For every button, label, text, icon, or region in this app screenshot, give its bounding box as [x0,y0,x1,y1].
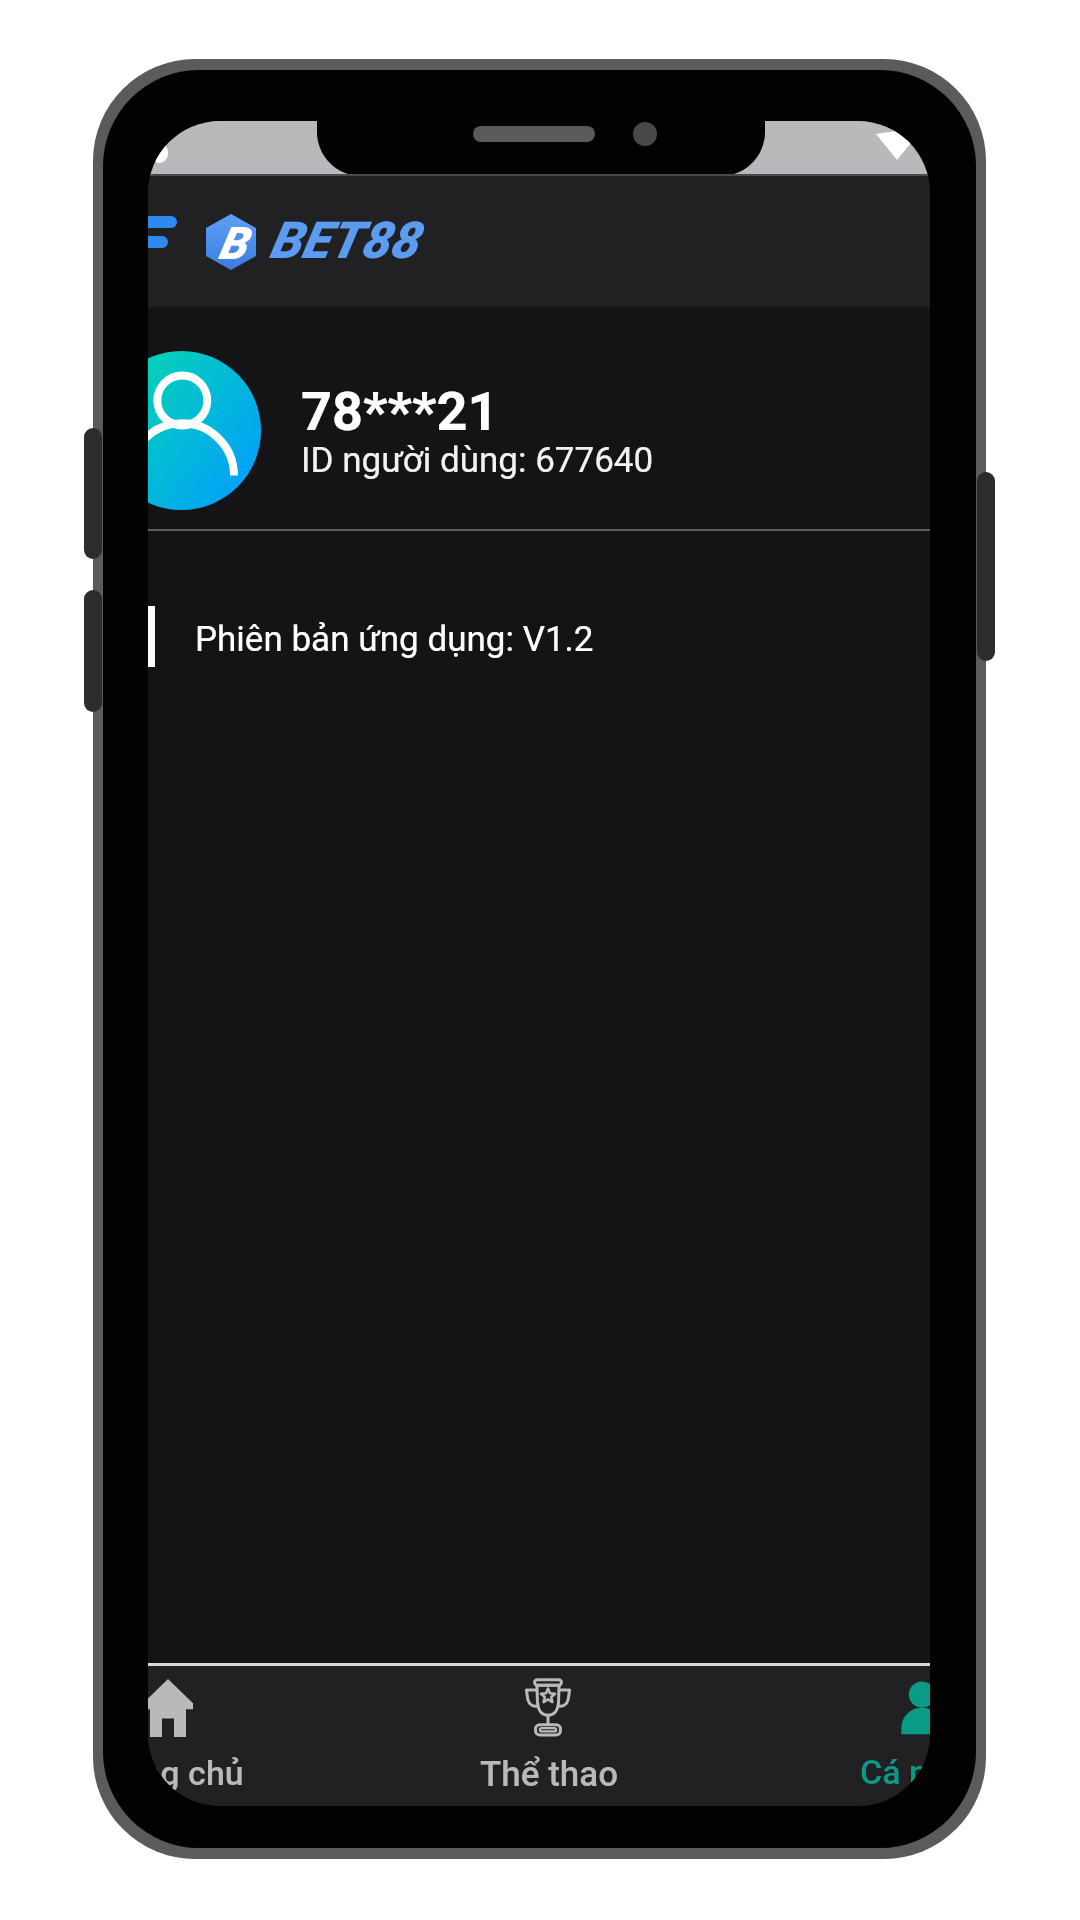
button[interactable]: 78***21 [148,307,930,529]
staticText: 78***21 [301,380,499,443]
staticText: BET88 [269,211,418,271]
staticText: Thể thao [480,1754,619,1795]
staticText: B [218,217,247,270]
button[interactable]: Cá nhân [738,1666,930,1806]
button[interactable]: Thể thao [358,1666,738,1806]
button[interactable]: Phiên bản ứng dụng: V1.2 [148,531,930,751]
staticText: ID người dùng: 677640 [301,440,654,481]
staticText: Trang chủ [148,1753,244,1793]
button[interactable]: Trang chủ [148,1666,358,1806]
staticText: Cá nhân [860,1752,930,1792]
staticText: Phiên bản ứng dụng: V1.2 [195,619,594,660]
button[interactable]: Menu [148,175,930,307]
